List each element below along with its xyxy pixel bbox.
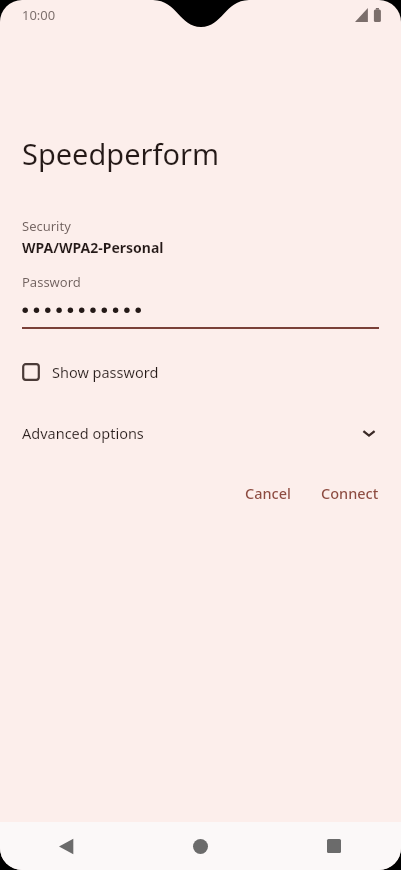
staticText: 10:00 xyxy=(22,6,56,24)
button[interactable]: Recent apps xyxy=(267,822,401,870)
staticText: Cancel xyxy=(245,483,291,503)
button[interactable] xyxy=(22,301,379,329)
staticText: Advanced options xyxy=(22,423,359,443)
button[interactable]: Cancel xyxy=(237,475,299,511)
staticText: WPA/WPA2-Personal xyxy=(22,238,164,257)
staticText: Show password xyxy=(52,362,159,382)
button[interactable]: Back xyxy=(0,822,133,870)
button[interactable]: Show password xyxy=(22,357,159,387)
staticText: Security xyxy=(22,217,71,235)
staticText: Password xyxy=(22,273,81,291)
button[interactable]: Advanced options xyxy=(0,417,401,449)
staticText: Speedperform xyxy=(22,134,220,173)
button[interactable]: Connect xyxy=(313,475,387,511)
other: Expand advanced options xyxy=(359,423,379,443)
button[interactable]: Home xyxy=(133,822,267,870)
staticText: Connect xyxy=(321,483,379,503)
